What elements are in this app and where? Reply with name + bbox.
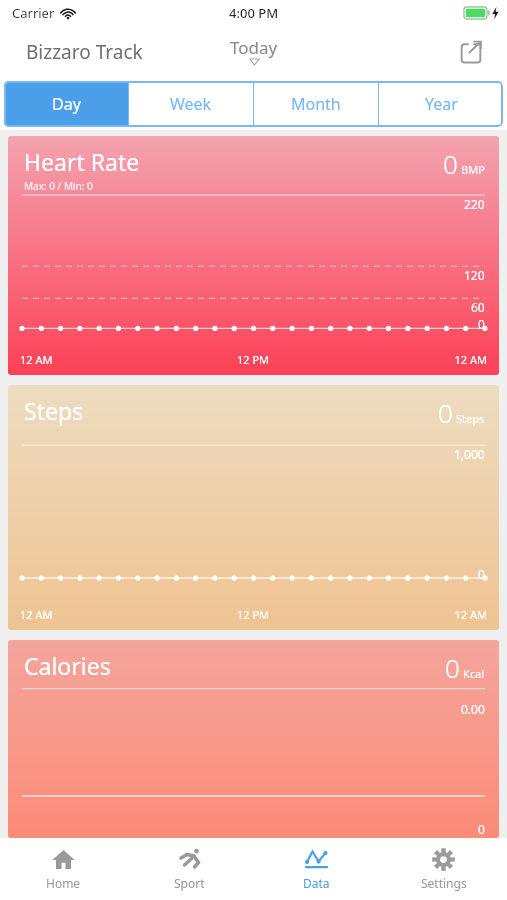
button[interactable]: Data <box>253 838 380 900</box>
staticText: 0 <box>478 566 485 582</box>
button[interactable]: Week <box>129 81 253 127</box>
staticText: Heart Rate <box>24 146 140 177</box>
staticText: 12 AM <box>331 352 487 367</box>
staticText: Steps <box>456 411 485 426</box>
staticText: Year <box>425 93 458 115</box>
staticText: BMP <box>461 162 485 177</box>
button[interactable]: Today <box>220 34 288 67</box>
button[interactable]: 0.00 <box>8 640 499 838</box>
staticText: 0 <box>478 316 485 332</box>
staticText: 12 AM <box>20 607 175 622</box>
button[interactable]: Sport <box>126 838 253 900</box>
staticText: Kcal <box>463 666 485 681</box>
button[interactable]: Year <box>379 81 503 127</box>
button[interactable]: Settings <box>380 838 507 900</box>
staticText: 0 <box>445 650 460 685</box>
staticText: 12 AM <box>331 607 487 622</box>
staticText: 12 PM <box>175 352 331 367</box>
button[interactable]: Month <box>254 81 378 127</box>
staticText: 12 PM <box>175 607 331 622</box>
staticText: Bizzaro Track <box>26 39 143 65</box>
staticText: Max: 0 / Min: 0 <box>24 179 93 193</box>
staticText: 12 AM <box>20 352 175 367</box>
staticText: Steps <box>24 395 84 426</box>
staticText: 0 <box>438 395 453 430</box>
staticText: 0.00 <box>461 701 485 717</box>
staticText: Day <box>52 93 81 115</box>
staticText: Carrier <box>12 4 55 22</box>
staticText: Calories <box>24 650 111 681</box>
staticText: 220 <box>464 196 485 212</box>
button[interactable]: Share <box>453 34 489 70</box>
staticText: Sport <box>174 875 205 891</box>
staticText: Week <box>170 93 212 115</box>
button[interactable]: 220 <box>8 136 499 375</box>
staticText: 4:00 PM <box>229 4 279 22</box>
staticText: Data <box>303 875 330 891</box>
staticText: 60 <box>471 299 485 315</box>
staticText: Home <box>46 875 81 891</box>
staticText: Today <box>230 36 278 59</box>
staticText: 0 <box>443 146 458 181</box>
staticText: Settings <box>421 875 467 891</box>
staticText: Month <box>291 93 341 115</box>
staticText: 1,000 <box>454 446 485 462</box>
button[interactable]: Home <box>0 838 126 900</box>
button[interactable]: 1,000 <box>8 385 499 630</box>
staticText: 0 <box>478 821 485 837</box>
staticText: 120 <box>464 267 485 283</box>
button[interactable]: Day <box>4 81 128 127</box>
